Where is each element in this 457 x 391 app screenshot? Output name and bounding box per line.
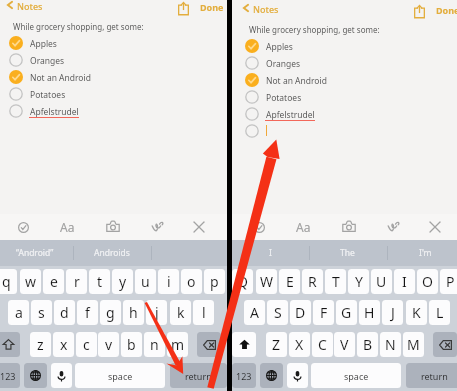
button[interactable]: [232, 122, 457, 139]
button[interactable]: Potatoes: [0, 85, 227, 102]
button[interactable]: 123: [232, 363, 256, 388]
button[interactable]: W: [256, 269, 277, 294]
button[interactable]: F: [313, 300, 334, 325]
button[interactable]: return: [170, 363, 227, 388]
button[interactable]: Z: [266, 332, 287, 357]
button[interactable]: P: [440, 269, 457, 294]
button[interactable]: Checklist: [13, 217, 33, 237]
button[interactable]: B: [357, 332, 378, 357]
button[interactable]: Apples: [232, 37, 457, 54]
button[interactable]: Y: [348, 269, 369, 294]
button[interactable]: Q: [232, 269, 253, 294]
button[interactable]: J: [382, 300, 403, 325]
button[interactable]: y: [112, 269, 133, 294]
button[interactable]: o: [181, 269, 202, 294]
button[interactable]: Backspace: [433, 332, 457, 357]
button[interactable]: A: [244, 300, 265, 325]
button[interactable]: Apfelstrudel: [0, 102, 227, 119]
button[interactable]: Aa: [57, 217, 77, 237]
button[interactable]: r: [66, 269, 87, 294]
button[interactable]: Shift: [232, 332, 256, 357]
button[interactable]: Apples: [0, 34, 227, 51]
button[interactable]: s: [31, 300, 52, 325]
button[interactable]: H: [359, 300, 380, 325]
button[interactable]: Shift: [0, 332, 20, 357]
button[interactable]: Oranges: [0, 51, 227, 68]
button[interactable]: L: [429, 300, 450, 325]
button[interactable]: O: [417, 269, 438, 294]
button[interactable]: Not an Android: [0, 68, 227, 85]
button[interactable]: Potatoes: [232, 88, 457, 105]
button[interactable]: v: [98, 332, 119, 357]
button[interactable]: V: [334, 332, 355, 357]
button[interactable]: Switch keyboard: [260, 363, 283, 388]
button[interactable]: q: [0, 269, 17, 294]
button[interactable]: N: [380, 332, 401, 357]
button[interactable]: Camera: [103, 216, 123, 236]
button[interactable]: R: [302, 269, 323, 294]
button[interactable]: M: [403, 332, 424, 357]
button[interactable]: a: [8, 300, 29, 325]
button[interactable]: “Android”: [0, 240, 73, 266]
button[interactable]: [151, 240, 228, 266]
button[interactable]: Notes: [6, 0, 51, 14]
button[interactable]: X: [289, 332, 310, 357]
staticText: w: [25, 272, 37, 291]
button[interactable]: Apfelstrudel: [232, 105, 457, 122]
button[interactable]: b: [121, 332, 142, 357]
button[interactable]: t: [89, 269, 110, 294]
button[interactable]: space: [75, 363, 165, 388]
button[interactable]: j: [146, 300, 167, 325]
button[interactable]: Share: [175, 0, 191, 16]
button[interactable]: Backspace: [197, 332, 221, 357]
button[interactable]: Not an Android: [232, 71, 457, 88]
button[interactable]: Close: [425, 217, 445, 237]
button[interactable]: I: [394, 269, 415, 294]
button[interactable]: C: [312, 332, 333, 357]
button[interactable]: z: [30, 332, 51, 357]
button[interactable]: E: [279, 269, 300, 294]
button[interactable]: Done: [436, 4, 457, 16]
button[interactable]: Share: [411, 3, 427, 19]
button[interactable]: l: [193, 300, 214, 325]
button[interactable]: f: [77, 300, 98, 325]
button[interactable]: I: [232, 240, 309, 266]
button[interactable]: Aa: [293, 217, 313, 237]
button[interactable]: G: [336, 300, 357, 325]
button[interactable]: x: [53, 332, 74, 357]
button[interactable]: Done: [200, 1, 224, 13]
button[interactable]: T: [325, 269, 346, 294]
button[interactable]: Androids: [73, 240, 150, 266]
button[interactable]: k: [170, 300, 191, 325]
button[interactable]: S: [267, 300, 288, 325]
button[interactable]: d: [54, 300, 75, 325]
button[interactable]: i: [158, 269, 179, 294]
button[interactable]: K: [406, 300, 427, 325]
button[interactable]: I'm: [387, 240, 457, 266]
button[interactable]: Markup: [148, 216, 168, 236]
button[interactable]: Switch keyboard: [24, 363, 47, 388]
button[interactable]: e: [43, 269, 64, 294]
button[interactable]: return: [406, 363, 457, 388]
button[interactable]: Notes: [242, 3, 287, 17]
button[interactable]: u: [135, 269, 156, 294]
button[interactable]: m: [167, 332, 188, 357]
button[interactable]: Oranges: [232, 54, 457, 71]
button[interactable]: 123: [0, 363, 20, 388]
button[interactable]: Checklist: [249, 217, 269, 237]
button[interactable]: Markup: [384, 216, 404, 236]
button[interactable]: c: [76, 332, 97, 357]
button[interactable]: w: [20, 269, 41, 294]
button[interactable]: p: [204, 269, 225, 294]
button[interactable]: g: [100, 300, 121, 325]
button[interactable]: Close: [189, 217, 209, 237]
button[interactable]: space: [311, 363, 401, 388]
button[interactable]: The: [309, 240, 386, 266]
button[interactable]: Dictate: [51, 363, 72, 388]
button[interactable]: h: [123, 300, 144, 325]
button[interactable]: Camera: [339, 216, 359, 236]
button[interactable]: D: [290, 300, 311, 325]
button[interactable]: Dictate: [287, 363, 308, 388]
button[interactable]: U: [371, 269, 392, 294]
button[interactable]: n: [144, 332, 165, 357]
